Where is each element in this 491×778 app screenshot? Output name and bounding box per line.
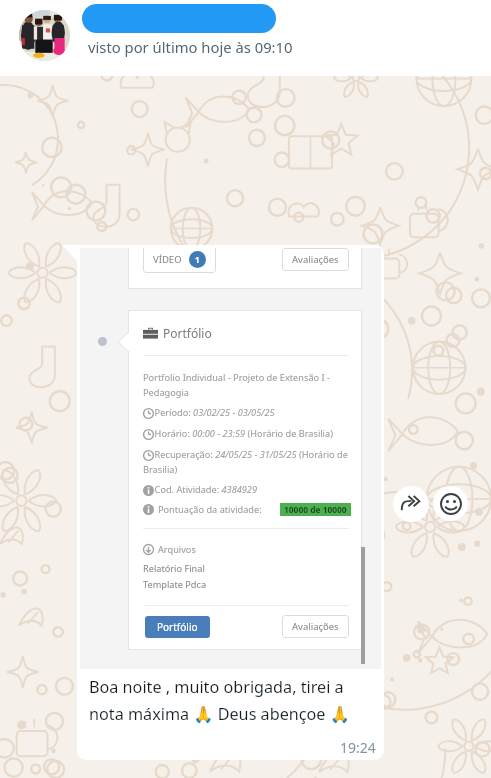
button[interactable]: Reagir com emoji bbox=[433, 486, 468, 521]
staticText: Portfólio bbox=[163, 325, 212, 341]
staticText: Arquivos bbox=[158, 543, 196, 556]
staticText: Avaliações bbox=[292, 620, 339, 633]
staticText: Pontuação da atividade: bbox=[158, 503, 262, 516]
button[interactable]: Portfólio bbox=[145, 616, 210, 638]
button[interactable]: VÍDEO bbox=[143, 248, 216, 273]
staticText: Portfólio bbox=[157, 620, 198, 634]
staticText: 1 bbox=[195, 254, 200, 265]
staticText: Portfolio Individual - Projeto de Extens… bbox=[143, 371, 349, 398]
staticText: Horário: 00:00 - 23:59 (Horário de Brasi… bbox=[143, 427, 349, 440]
staticText: VÍDEO bbox=[153, 253, 182, 266]
staticText: 19:24 bbox=[340, 738, 376, 757]
staticText: Relatório Final bbox=[143, 562, 205, 575]
staticText: Recuperação: 24/05/25 - 31/05/25 (Horári… bbox=[143, 448, 349, 475]
button[interactable]: Avaliações bbox=[282, 615, 349, 638]
staticText: 10000 de 10000 bbox=[284, 504, 347, 515]
button[interactable]: Encaminhar mensagem bbox=[393, 486, 429, 522]
staticText: Avaliações bbox=[292, 253, 339, 266]
staticText: Cod. Atividade: 4384929 bbox=[143, 483, 349, 496]
button[interactable]: Avaliações bbox=[282, 248, 349, 271]
staticText: Boa noite , muito obrigada, tirei a nota… bbox=[89, 676, 374, 725]
staticText: Período: 03/02/25 - 03/05/25 bbox=[143, 406, 349, 419]
staticText: Template Pdca bbox=[143, 578, 207, 591]
staticText: visto por último hoje às 09:10 bbox=[88, 37, 293, 57]
button[interactable]: VÍDEO bbox=[77, 245, 384, 760]
